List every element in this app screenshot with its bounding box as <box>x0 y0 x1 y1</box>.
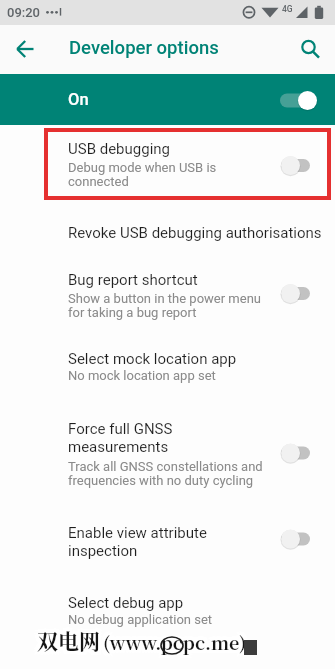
staticText: 双电网 <box>34 628 97 658</box>
staticText: 双电网 <box>39 622 102 652</box>
staticText: (www.pcpc.me) <box>103 627 247 653</box>
staticText: 双电网 <box>37 623 100 653</box>
staticText: 09:20 <box>7 5 41 20</box>
staticText: Enable view attribute inspection <box>68 524 207 560</box>
staticText: Force full GNSS measurements <box>68 420 173 456</box>
staticText: 双电网 <box>35 625 98 655</box>
staticText: (www.pcpc.me) <box>100 629 244 655</box>
staticText: On <box>68 90 89 109</box>
staticText: (www.pcpc.me) <box>105 629 249 655</box>
staticText: Revoke USB debugging authorisations <box>68 224 322 242</box>
staticText: No mock location app set <box>68 368 216 383</box>
button[interactable]: Select debug app <box>0 575 335 669</box>
staticText: (www.pcpc.me) <box>103 625 247 651</box>
staticText: No debug application set <box>68 612 213 627</box>
staticText: Debug mode when USB is connected <box>68 160 217 189</box>
staticText: 双电网 <box>39 625 102 655</box>
button[interactable]: Enable view attribute inspection <box>0 503 335 575</box>
button[interactable]: Bug report shortcut <box>0 253 335 329</box>
staticText: (www.pcpc.me) <box>103 629 247 655</box>
staticText: 4G <box>282 4 293 14</box>
staticText: (www.pcpc.me) <box>106 632 250 658</box>
staticText: 双电网 <box>37 625 100 655</box>
staticText: 双电网 <box>40 622 103 652</box>
staticText: (www.pcpc.me) <box>100 626 244 652</box>
staticText: 双电网 <box>40 625 103 655</box>
staticText: 双电网 <box>37 621 100 651</box>
button[interactable]: Revoke USB debugging authorisations <box>0 209 335 253</box>
staticText: USB debugging <box>68 140 171 158</box>
staticText: (www.pcpc.me) <box>107 629 251 655</box>
staticText: 双电网 <box>34 622 97 652</box>
staticText: Developer options <box>69 37 219 59</box>
button[interactable]: Select mock location app <box>0 329 335 400</box>
button[interactable]: On <box>0 74 335 125</box>
staticText: (www.pcpc.me) <box>105 626 249 652</box>
staticText: Select mock location app <box>68 350 237 368</box>
staticText: (www.pcpc.me) <box>101 626 245 652</box>
button[interactable] <box>0 26 48 74</box>
staticText: 双电网 <box>34 627 97 657</box>
button[interactable]: USB debugging <box>0 125 335 209</box>
staticText: 双电网 <box>39 627 102 657</box>
staticText: (www.pcpc.me) <box>101 629 245 655</box>
staticText: Show a button in the power menu for taki… <box>68 291 261 320</box>
staticText: Bug report shortcut <box>68 271 198 289</box>
staticText: (www.pcpc.me) <box>101 631 245 657</box>
staticText: Select debug app <box>68 594 184 612</box>
staticText: (www.pcpc.me) <box>103 631 247 657</box>
staticText: 双电网 <box>40 628 103 658</box>
staticText: 双电网 <box>37 628 100 658</box>
staticText: (www.pcpc.me) <box>106 626 250 652</box>
staticText: (www.pcpc.me) <box>105 631 249 657</box>
staticText: 双电网 <box>33 625 96 655</box>
staticText: Track all GNSS constellations and freque… <box>68 459 263 488</box>
button[interactable]: Force full GNSS measurements <box>0 400 335 503</box>
staticText: 双电网 <box>34 622 97 652</box>
staticText: (www.pcpc.me) <box>100 632 244 658</box>
button[interactable] <box>287 26 335 74</box>
staticText: (www.pcpc.me) <box>103 632 247 658</box>
staticText: 双电网 <box>37 627 100 657</box>
